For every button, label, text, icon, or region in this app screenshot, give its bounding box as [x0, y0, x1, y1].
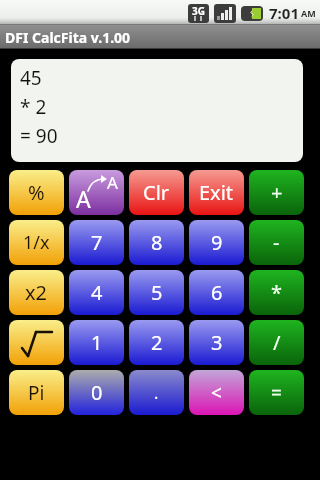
- staticText: +: [271, 179, 283, 206]
- staticText: Exit: [199, 179, 234, 206]
- staticText: = 90: [20, 123, 58, 149]
- staticText: -: [273, 229, 280, 256]
- staticText: *: [271, 279, 283, 306]
- staticText: DFI CalcFita v.1.00: [5, 28, 131, 47]
- button[interactable]: 3: [189, 320, 244, 365]
- button[interactable]: 6: [189, 270, 244, 315]
- button[interactable]: 1/x: [9, 220, 64, 265]
- staticText: 3: [211, 329, 223, 356]
- staticText: <: [211, 380, 222, 406]
- staticText: /: [273, 329, 281, 356]
- staticText: 7: [91, 229, 103, 256]
- staticText: 9: [211, 229, 223, 256]
- button[interactable]: Clr: [129, 170, 184, 215]
- staticText: 45: [20, 65, 42, 91]
- staticText: 1/x: [23, 230, 50, 255]
- button[interactable]: .: [129, 370, 184, 415]
- button[interactable]: Pi: [9, 370, 64, 415]
- staticText: %: [28, 179, 45, 206]
- button[interactable]: 5: [129, 270, 184, 315]
- staticText: .: [154, 382, 159, 404]
- staticText: A: [107, 171, 118, 194]
- staticText: Pi: [28, 380, 45, 406]
- button[interactable]: =: [249, 370, 304, 415]
- staticText: 0: [91, 379, 103, 406]
- button[interactable]: [9, 320, 64, 365]
- button[interactable]: /: [249, 320, 304, 365]
- staticText: 4: [91, 279, 103, 306]
- button[interactable]: x2: [9, 270, 64, 315]
- button[interactable]: *: [249, 270, 304, 315]
- button[interactable]: -: [249, 220, 304, 265]
- staticText: =: [271, 380, 282, 406]
- staticText: AM: [301, 7, 316, 19]
- staticText: 3G: [192, 4, 205, 18]
- staticText: Clr: [143, 179, 170, 206]
- button[interactable]: <: [189, 370, 244, 415]
- staticText: 7:01: [269, 3, 299, 23]
- button[interactable]: 2: [129, 320, 184, 365]
- button[interactable]: %: [9, 170, 64, 215]
- staticText: 5: [151, 279, 163, 306]
- button[interactable]: A: [69, 170, 124, 215]
- staticText: x2: [25, 279, 48, 306]
- button[interactable]: 8: [129, 220, 184, 265]
- staticText: 6: [211, 279, 223, 306]
- staticText: A: [76, 183, 91, 214]
- button[interactable]: 1: [69, 320, 124, 365]
- button[interactable]: 9: [189, 220, 244, 265]
- staticText: 2: [151, 329, 163, 356]
- staticText: * 2: [20, 94, 47, 120]
- staticText: 8: [151, 229, 163, 256]
- button[interactable]: 4: [69, 270, 124, 315]
- button[interactable]: 45: [11, 59, 303, 162]
- button[interactable]: Exit: [189, 170, 244, 215]
- button[interactable]: 0: [69, 370, 124, 415]
- staticText: 1: [91, 329, 103, 356]
- button[interactable]: +: [249, 170, 304, 215]
- button[interactable]: 7: [69, 220, 124, 265]
